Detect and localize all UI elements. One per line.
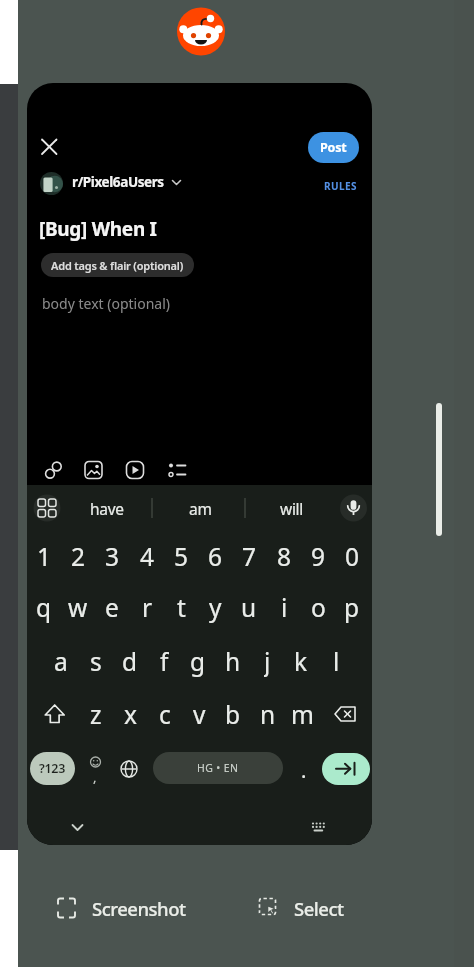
- staticText: f: [160, 645, 169, 677]
- staticText: HG • EN: [197, 761, 239, 775]
- staticText: h: [225, 645, 241, 677]
- staticText: k: [294, 645, 308, 677]
- button[interactable]: 7: [234, 540, 264, 572]
- button[interactable]: a: [46, 645, 76, 677]
- staticText: 7: [242, 540, 257, 572]
- staticText: Add tags & flair (optional): [51, 258, 184, 273]
- button[interactable]: Add tags & flair (optional): [41, 253, 194, 277]
- button[interactable]: 4: [132, 540, 162, 572]
- staticText: z: [90, 698, 102, 730]
- button[interactable]: f: [149, 645, 179, 677]
- staticText: 9: [311, 540, 326, 572]
- staticText: b: [225, 698, 241, 730]
- staticText: am: [189, 498, 212, 519]
- button[interactable]: z: [81, 698, 111, 730]
- button[interactable]: [31, 128, 67, 164]
- button[interactable]: Screenshot: [56, 894, 186, 922]
- staticText: have: [90, 498, 124, 519]
- button[interactable]: have: [67, 495, 147, 521]
- staticText: r/Pixel6aUsers: [72, 173, 164, 191]
- button[interactable]: Select: [258, 894, 344, 922]
- staticText: 3: [105, 540, 120, 572]
- button[interactable]: 5: [166, 540, 196, 572]
- button[interactable]: [37, 696, 73, 732]
- button[interactable]: HG • EN: [153, 752, 283, 784]
- staticText: t: [177, 591, 186, 623]
- button[interactable]: o: [303, 591, 333, 623]
- staticText: x: [124, 698, 137, 730]
- button[interactable]: 2: [63, 540, 93, 572]
- button[interactable]: r: [132, 591, 162, 623]
- staticText: 6: [208, 540, 223, 572]
- button[interactable]: g: [183, 645, 213, 677]
- staticText: Select: [294, 896, 344, 921]
- staticText: Post: [320, 139, 347, 156]
- staticText: r: [142, 591, 153, 623]
- button[interactable]: l: [321, 645, 351, 677]
- button[interactable]: p: [337, 591, 367, 623]
- button[interactable]: e: [97, 591, 127, 623]
- button[interactable]: ?123: [30, 752, 75, 785]
- staticText: e: [105, 591, 119, 623]
- staticText: 0: [345, 540, 360, 572]
- staticText: u: [241, 591, 257, 623]
- staticText: c: [159, 698, 171, 730]
- button[interactable]: 8: [269, 540, 299, 572]
- staticText: RULES: [324, 179, 357, 193]
- staticText: o: [311, 591, 326, 623]
- button[interactable]: m: [287, 698, 317, 730]
- staticText: 2: [71, 540, 86, 572]
- staticText: v: [193, 698, 206, 730]
- staticText: body text (optional): [42, 294, 170, 313]
- button[interactable]: [35, 453, 215, 487]
- staticText: 4: [140, 540, 155, 572]
- button[interactable]: t: [166, 591, 196, 623]
- staticText: 5: [174, 540, 189, 572]
- staticText: 8: [277, 540, 292, 572]
- button[interactable]: c: [150, 698, 180, 730]
- button[interactable]: Post: [308, 132, 359, 163]
- button[interactable]: 0: [337, 540, 367, 572]
- staticText: w: [68, 591, 88, 623]
- staticText: ,: [93, 768, 97, 786]
- button[interactable]: d: [115, 645, 145, 677]
- staticText: s: [90, 645, 102, 677]
- button[interactable]: y: [200, 591, 230, 623]
- staticText: i: [281, 591, 288, 623]
- button[interactable]: x: [115, 698, 145, 730]
- staticText: m: [291, 698, 314, 730]
- staticText: n: [260, 698, 276, 730]
- button[interactable]: w: [63, 591, 93, 623]
- button[interactable]: am: [165, 495, 235, 521]
- button[interactable]: .: [294, 757, 314, 783]
- button[interactable]: j: [252, 645, 282, 677]
- button[interactable]: n: [253, 698, 283, 730]
- button[interactable]: [35, 167, 180, 199]
- button[interactable]: 3: [97, 540, 127, 572]
- staticText: [Bug] When I: [39, 216, 157, 242]
- button[interactable]: h: [218, 645, 248, 677]
- button[interactable]: 6: [200, 540, 230, 572]
- button[interactable]: q: [29, 591, 59, 623]
- staticText: d: [122, 645, 138, 677]
- button[interactable]: will: [256, 495, 326, 521]
- staticText: .: [301, 757, 307, 783]
- button[interactable]: i: [269, 591, 299, 623]
- staticText: y: [209, 591, 222, 623]
- staticText: 1: [37, 540, 52, 572]
- button[interactable]: v: [184, 698, 214, 730]
- staticText: l: [333, 645, 340, 677]
- staticText: Screenshot: [92, 896, 186, 921]
- button[interactable]: [322, 753, 370, 785]
- button[interactable]: b: [218, 698, 248, 730]
- button[interactable]: 9: [303, 540, 333, 572]
- button[interactable]: 1: [29, 540, 59, 572]
- staticText: g: [190, 645, 206, 677]
- staticText: p: [344, 591, 360, 623]
- staticText: j: [264, 645, 271, 677]
- button[interactable]: u: [234, 591, 264, 623]
- button[interactable]: [328, 696, 364, 732]
- button[interactable]: k: [286, 645, 316, 677]
- button[interactable]: s: [81, 645, 111, 677]
- staticText: a: [54, 645, 68, 677]
